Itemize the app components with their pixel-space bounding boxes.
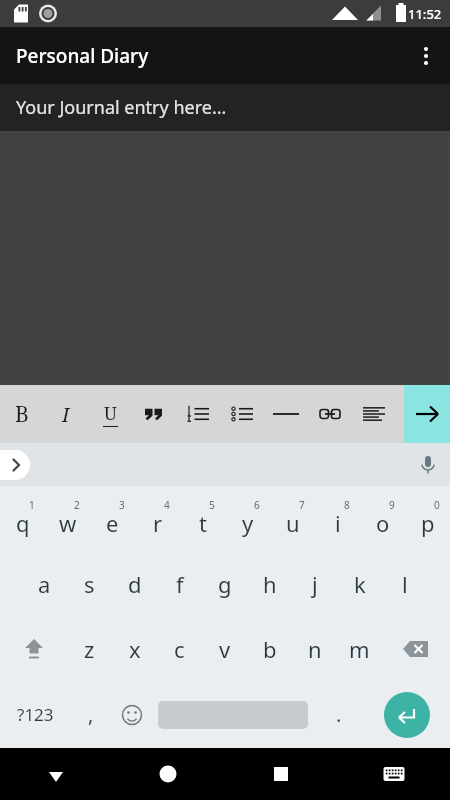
staticText: 6	[254, 498, 260, 512]
button[interactable]: 0	[405, 486, 450, 551]
button[interactable]: 6	[225, 486, 270, 551]
button[interactable]: Align	[352, 385, 396, 443]
button[interactable]: j	[292, 551, 337, 616]
staticText: w	[59, 508, 77, 538]
staticText: e	[106, 508, 119, 538]
staticText: a	[38, 569, 51, 599]
button[interactable]: d	[112, 551, 157, 616]
button[interactable]: Horizontal rule	[264, 385, 308, 443]
staticText: b	[263, 634, 277, 664]
button[interactable]: More options	[402, 32, 450, 80]
staticText: 8	[344, 498, 350, 512]
button[interactable]: b	[247, 616, 292, 681]
staticText: 4	[164, 498, 170, 512]
button[interactable]: f	[157, 551, 202, 616]
button[interactable]: Numbered list	[176, 385, 220, 443]
staticText: 1	[29, 498, 35, 512]
button[interactable]: Expand toolbar	[0, 450, 30, 480]
button[interactable]: x	[112, 616, 157, 681]
button[interactable]: 4	[135, 486, 180, 551]
button[interactable]: Emoji	[111, 681, 152, 748]
button[interactable]: h	[247, 551, 292, 616]
staticText: x	[129, 634, 141, 664]
button[interactable]: Enter	[364, 681, 450, 748]
staticText: f	[176, 569, 184, 599]
staticText: 7	[299, 498, 305, 512]
button[interactable]: Shift	[0, 616, 67, 681]
staticText: 11:52	[408, 5, 442, 23]
staticText: 5	[209, 498, 215, 512]
staticText: s	[84, 569, 95, 599]
staticText: l	[402, 569, 408, 599]
staticText: 3	[119, 498, 125, 512]
button[interactable]: c	[157, 616, 202, 681]
button[interactable]: 9	[360, 486, 405, 551]
staticText: t	[199, 508, 207, 538]
button[interactable]: l	[382, 551, 427, 616]
button[interactable]: Switch keyboard	[337, 748, 450, 800]
staticText: c	[174, 634, 185, 664]
staticText: Your Journal entry here...	[16, 95, 227, 120]
staticText: v	[219, 634, 231, 664]
button[interactable]: Voice input	[406, 443, 450, 486]
button[interactable]: Backspace	[382, 616, 450, 681]
staticText: h	[263, 569, 277, 599]
staticText: q	[16, 508, 30, 538]
staticText: p	[421, 508, 435, 538]
button[interactable]: .	[314, 681, 364, 748]
button[interactable]: 2	[45, 486, 90, 551]
button[interactable]: a	[22, 551, 67, 616]
button[interactable]: Underline	[88, 385, 132, 443]
staticText: i	[335, 508, 341, 538]
staticText: z	[84, 634, 95, 664]
staticText: y	[242, 508, 254, 538]
button[interactable]: Your Journal entry here...	[0, 84, 450, 131]
button[interactable]: Italic	[44, 385, 88, 443]
staticText: n	[308, 634, 322, 664]
button[interactable]: Back	[0, 748, 112, 800]
staticText: g	[218, 569, 232, 599]
staticText: r	[153, 508, 163, 538]
staticText: Personal Diary	[16, 43, 149, 69]
staticText: 9	[389, 498, 395, 512]
staticText: ?123	[17, 703, 54, 726]
staticText: B	[15, 400, 29, 429]
staticText: o	[376, 508, 390, 538]
staticText: .	[336, 701, 342, 728]
button[interactable]: s	[67, 551, 112, 616]
button[interactable]: Insert link	[308, 385, 352, 443]
staticText: ,	[88, 701, 94, 728]
button[interactable]: n	[292, 616, 337, 681]
button[interactable]: ,	[71, 681, 111, 748]
staticText: U	[104, 401, 117, 426]
button[interactable]: ?123	[0, 681, 71, 748]
button[interactable]: Recents	[224, 748, 337, 800]
button[interactable]: Space	[152, 681, 314, 748]
staticText: I	[62, 401, 70, 428]
button[interactable]: 1	[0, 486, 45, 551]
staticText: 2	[74, 498, 80, 512]
staticText: u	[286, 508, 300, 538]
button[interactable]: Bulleted list	[220, 385, 264, 443]
staticText: 0	[434, 498, 440, 512]
button[interactable]: g	[202, 551, 247, 616]
staticText: j	[312, 569, 318, 599]
button[interactable]: m	[337, 616, 382, 681]
button[interactable]: v	[202, 616, 247, 681]
button[interactable]: Send	[404, 385, 450, 443]
button[interactable]: Quote	[132, 385, 176, 443]
button[interactable]: 3	[90, 486, 135, 551]
button[interactable]: z	[67, 616, 112, 681]
button[interactable]: 7	[270, 486, 315, 551]
button[interactable]: Bold	[0, 385, 44, 443]
button[interactable]: k	[337, 551, 382, 616]
button[interactable]: Home	[112, 748, 224, 800]
staticText: d	[128, 569, 142, 599]
button[interactable]: 8	[315, 486, 360, 551]
button[interactable]: 5	[180, 486, 225, 551]
staticText: k	[354, 569, 366, 599]
staticText: m	[349, 634, 370, 664]
